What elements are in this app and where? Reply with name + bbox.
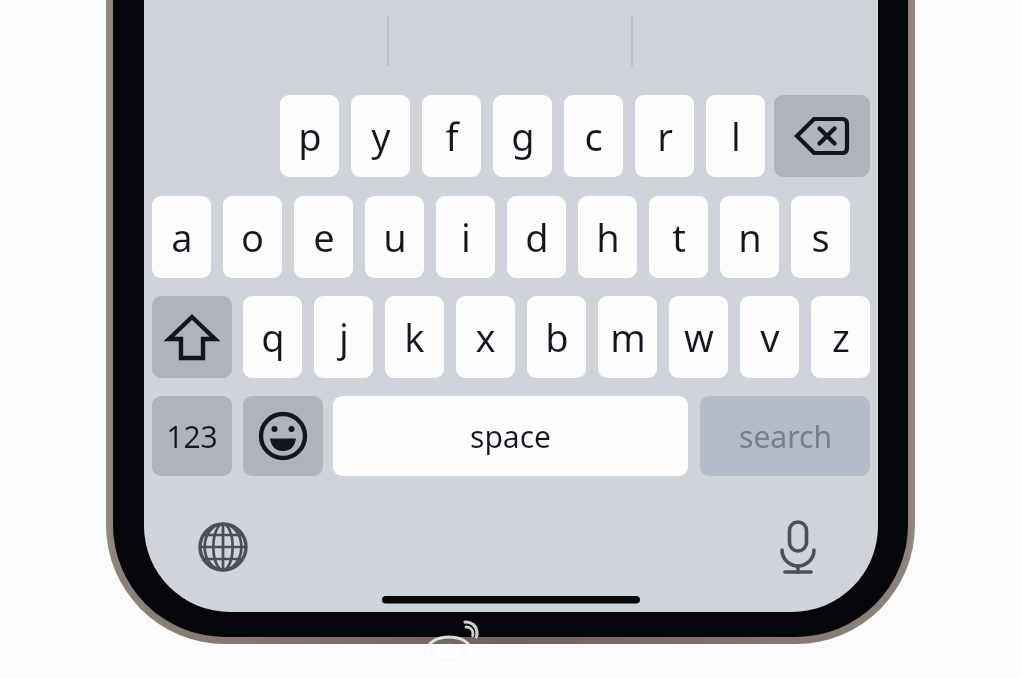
button[interactable]: j	[314, 296, 373, 378]
staticText: a	[171, 211, 193, 263]
staticText: k	[404, 311, 425, 363]
button[interactable]: e	[294, 196, 353, 278]
button[interactable]: Change keyboard	[188, 512, 258, 582]
staticText: l	[731, 110, 741, 162]
button[interactable]: 123	[152, 396, 232, 476]
staticText: c	[584, 110, 603, 162]
staticText: x	[475, 311, 496, 363]
staticText: g	[511, 110, 535, 162]
staticText: o	[241, 211, 264, 263]
button[interactable]: d	[507, 196, 566, 278]
button[interactable]: l	[706, 95, 765, 177]
staticText: v	[760, 311, 780, 363]
staticText: b	[545, 311, 569, 363]
button[interactable]: x	[456, 296, 515, 378]
staticText: w	[684, 311, 714, 363]
button[interactable]: n	[720, 196, 779, 278]
button[interactable]: g	[493, 95, 552, 177]
staticText: h	[596, 211, 620, 263]
button[interactable]: h	[578, 196, 637, 278]
button[interactable]: p	[280, 95, 339, 177]
button[interactable]: Dictate	[763, 512, 833, 582]
button[interactable]: q	[243, 296, 302, 378]
button[interactable]: y	[351, 95, 410, 177]
button[interactable]: k	[385, 296, 444, 378]
button[interactable]: u	[365, 196, 424, 278]
staticText: p	[298, 110, 322, 162]
staticText: d	[525, 211, 549, 263]
button[interactable]: Delete	[774, 95, 870, 177]
staticText: t	[672, 211, 686, 263]
button[interactable]: c	[564, 95, 623, 177]
button[interactable]: space	[333, 396, 688, 476]
button[interactable]: b	[527, 296, 586, 378]
staticText: n	[738, 211, 762, 263]
staticText: space	[470, 416, 551, 457]
button[interactable]: r	[635, 95, 694, 177]
button[interactable]: v	[740, 296, 799, 378]
button[interactable]: search	[700, 396, 870, 476]
button[interactable]: Emoji	[243, 396, 323, 476]
staticText: i	[461, 211, 471, 263]
staticText: 123	[166, 416, 218, 457]
button[interactable]: o	[223, 196, 282, 278]
button[interactable]: z	[811, 296, 870, 378]
button[interactable]: a	[152, 196, 211, 278]
staticText: r	[657, 110, 673, 162]
staticText: y	[371, 110, 391, 162]
button[interactable]: f	[422, 95, 481, 177]
staticText: e	[313, 211, 335, 263]
staticText: search	[739, 416, 832, 457]
button[interactable]: w	[669, 296, 728, 378]
staticText: z	[832, 311, 850, 363]
button[interactable]: t	[649, 196, 708, 278]
button[interactable]: m	[598, 296, 657, 378]
button[interactable]: Shift	[152, 296, 232, 378]
staticText: j	[339, 311, 349, 363]
staticText: m	[610, 311, 646, 363]
staticText: s	[811, 211, 830, 263]
button[interactable]: s	[791, 196, 850, 278]
staticText: q	[261, 311, 285, 363]
button[interactable]: i	[436, 196, 495, 278]
staticText: f	[445, 110, 459, 162]
staticText: u	[383, 211, 407, 263]
